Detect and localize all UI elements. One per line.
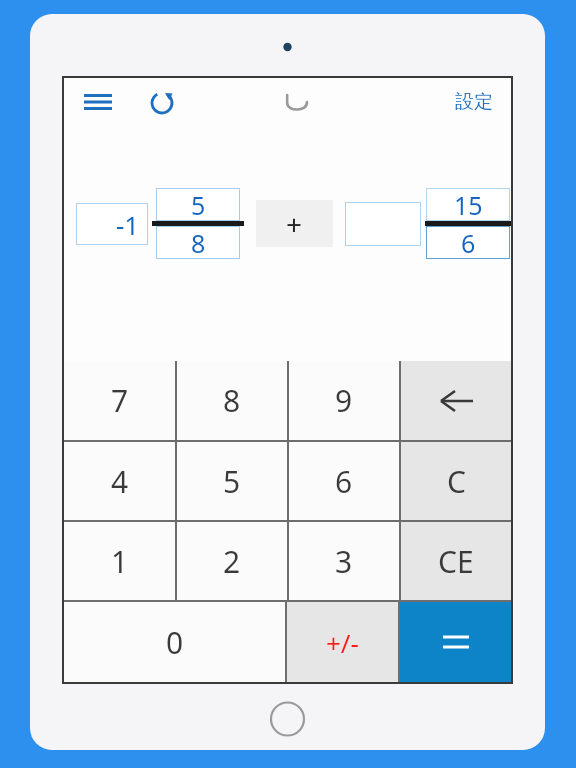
- button[interactable]: 8: [177, 361, 287, 440]
- staticText: -1: [116, 207, 140, 242]
- button[interactable]: +: [256, 200, 333, 247]
- button[interactable]: Undo: [275, 81, 317, 123]
- button[interactable]: Menu: [78, 82, 118, 122]
- staticText: 9: [335, 380, 353, 421]
- staticText: 7: [111, 380, 129, 421]
- staticText: 15: [454, 188, 483, 221]
- button[interactable]: 3: [289, 522, 399, 600]
- staticText: CE: [438, 541, 474, 582]
- button[interactable]: [345, 202, 421, 246]
- staticText: 0: [166, 622, 184, 663]
- button[interactable]: 6: [289, 442, 399, 520]
- button[interactable]: 1: [64, 522, 175, 600]
- staticText: 3: [335, 541, 353, 582]
- staticText: 8: [223, 380, 241, 421]
- button[interactable]: Backspace: [401, 361, 511, 440]
- button[interactable]: 5: [156, 188, 240, 221]
- staticText: 2: [223, 541, 241, 582]
- button[interactable]: CE: [401, 522, 511, 600]
- staticText: 1: [111, 541, 129, 582]
- button[interactable]: +/-: [287, 602, 398, 682]
- button[interactable]: 9: [289, 361, 399, 440]
- staticText: 5: [223, 461, 241, 502]
- button[interactable]: Reset: [142, 82, 182, 122]
- staticText: +: [286, 205, 303, 243]
- button[interactable]: -1: [76, 203, 148, 245]
- button[interactable]: [400, 602, 511, 682]
- button[interactable]: 0: [64, 602, 285, 682]
- button[interactable]: 15: [426, 188, 510, 221]
- button[interactable]: 4: [64, 442, 175, 520]
- button[interactable]: C: [401, 442, 511, 520]
- button[interactable]: 6: [426, 226, 510, 259]
- staticText: 6: [335, 461, 353, 502]
- staticText: 6: [461, 226, 476, 259]
- button[interactable]: 8: [156, 226, 240, 259]
- staticText: 5: [191, 188, 206, 221]
- button[interactable]: 設定: [447, 84, 501, 120]
- staticText: 4: [111, 461, 129, 502]
- staticText: C: [447, 461, 466, 502]
- staticText: +/-: [326, 625, 359, 660]
- button[interactable]: 5: [177, 442, 287, 520]
- staticText: 8: [191, 226, 206, 259]
- button[interactable]: 7: [64, 361, 175, 440]
- staticText: 設定: [455, 90, 493, 114]
- button[interactable]: 2: [177, 522, 287, 600]
